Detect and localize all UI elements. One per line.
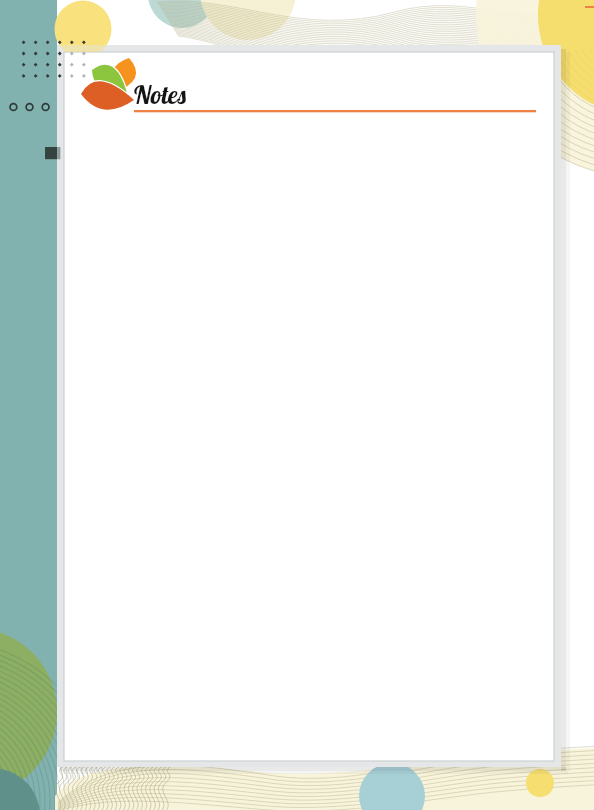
button[interactable]: Notes [134,79,244,119]
staticText: Notes [134,79,186,110]
